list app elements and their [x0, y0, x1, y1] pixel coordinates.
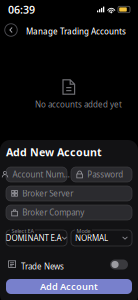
button[interactable]: Back — [2, 21, 19, 38]
button[interactable]: NORMAL — [71, 226, 132, 246]
staticText: Trade News — [21, 261, 64, 272]
button[interactable]: Account Num… — [6, 167, 67, 182]
staticText: DOMINANT E.A — [5, 233, 61, 243]
button[interactable]: Broker Company — [6, 205, 132, 220]
button[interactable]: Trade News — [110, 259, 128, 269]
staticText: Add Account — [40, 280, 98, 293]
staticText: Mode — [76, 227, 90, 235]
button[interactable]: DOMINANT E.A — [6, 226, 67, 246]
staticText: No accounts added yet — [35, 99, 122, 110]
staticText: Select EA — [11, 227, 33, 235]
button[interactable]: Add Account — [6, 279, 132, 294]
staticText: Account Num… — [13, 169, 70, 180]
staticText: Broker Company — [22, 207, 84, 218]
staticText: Manage Trading Accounts — [26, 26, 126, 37]
staticText: Add New Account — [6, 145, 102, 159]
staticText: Password — [87, 169, 123, 180]
button[interactable]: Password — [71, 167, 132, 182]
staticText: Broker Server — [22, 188, 73, 199]
staticText: NORMAL — [75, 233, 108, 243]
button[interactable]: Broker Server — [6, 186, 132, 201]
staticText: 06:39 — [8, 2, 35, 17]
